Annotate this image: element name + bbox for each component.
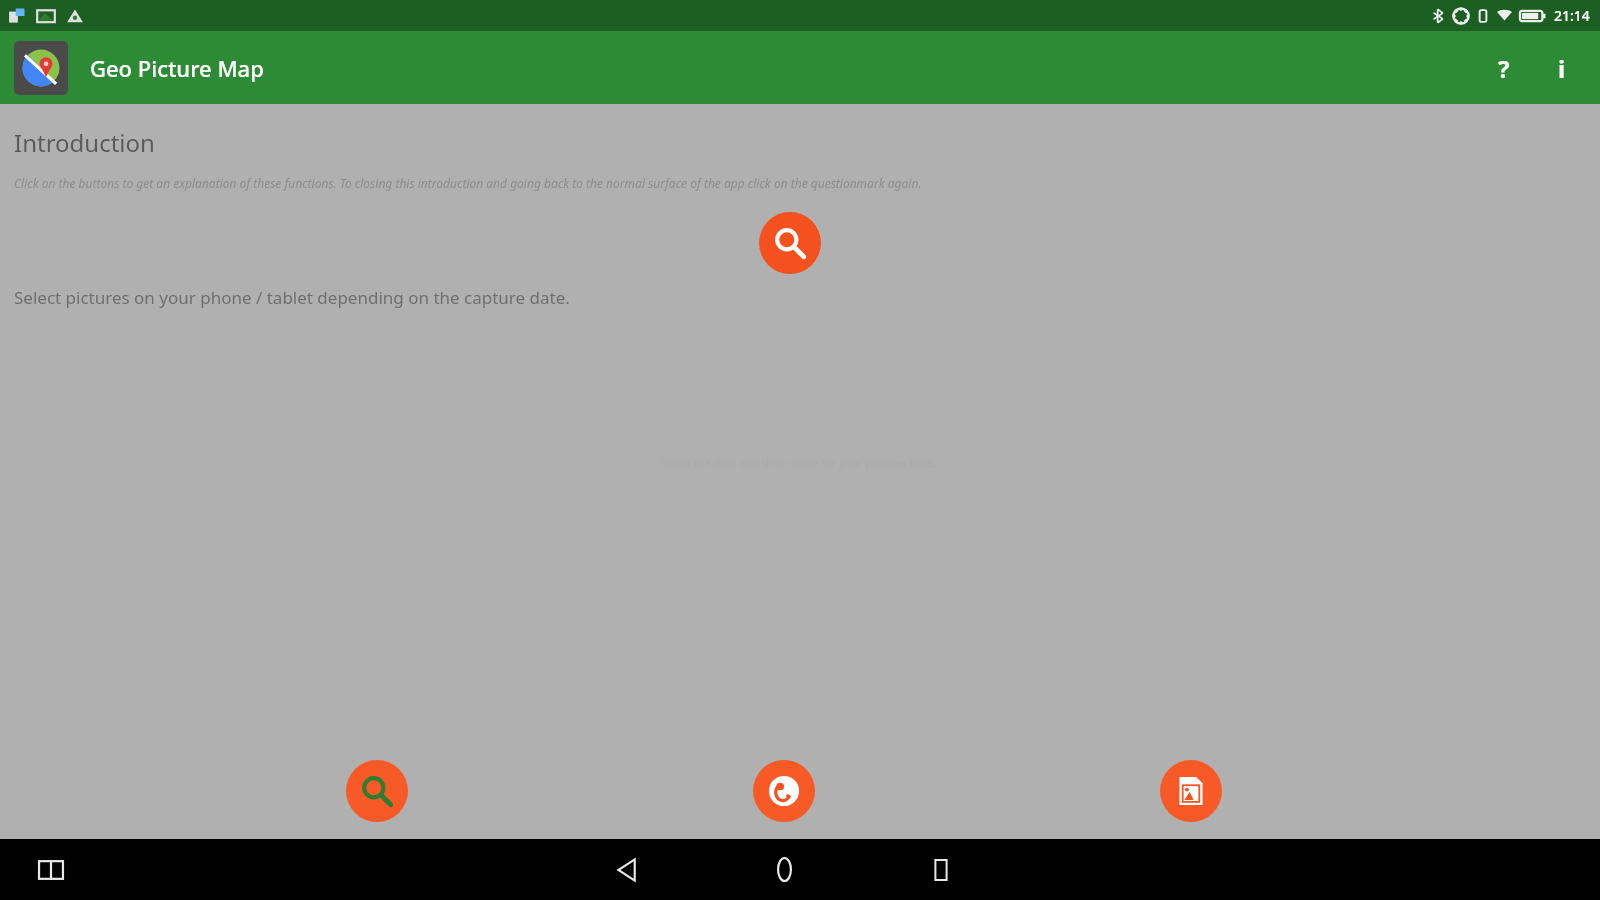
- button[interactable]: Home: [753, 839, 815, 900]
- button[interactable]: Back: [597, 839, 659, 900]
- button[interactable]: Search pictures: [759, 212, 821, 274]
- button[interactable]: Pictures: [1160, 760, 1222, 822]
- button[interactable]: Info: [1534, 40, 1590, 96]
- staticText: Click on the buttons to get an explanati…: [14, 175, 922, 191]
- staticText: 21:14: [1554, 6, 1590, 25]
- button[interactable]: Split screen: [22, 841, 80, 899]
- staticText: Geo Picture Map: [90, 53, 264, 83]
- button[interactable]: Recent apps: [910, 839, 972, 900]
- staticText: i: [1558, 52, 1566, 85]
- staticText: Introduction: [14, 126, 155, 159]
- button[interactable]: Search: [346, 760, 408, 822]
- staticText: Select pictures on your phone / tablet d…: [14, 286, 570, 309]
- button[interactable]: Help: [1476, 40, 1532, 96]
- button[interactable]: Show map: [753, 760, 815, 822]
- staticText: ?: [1498, 52, 1510, 85]
